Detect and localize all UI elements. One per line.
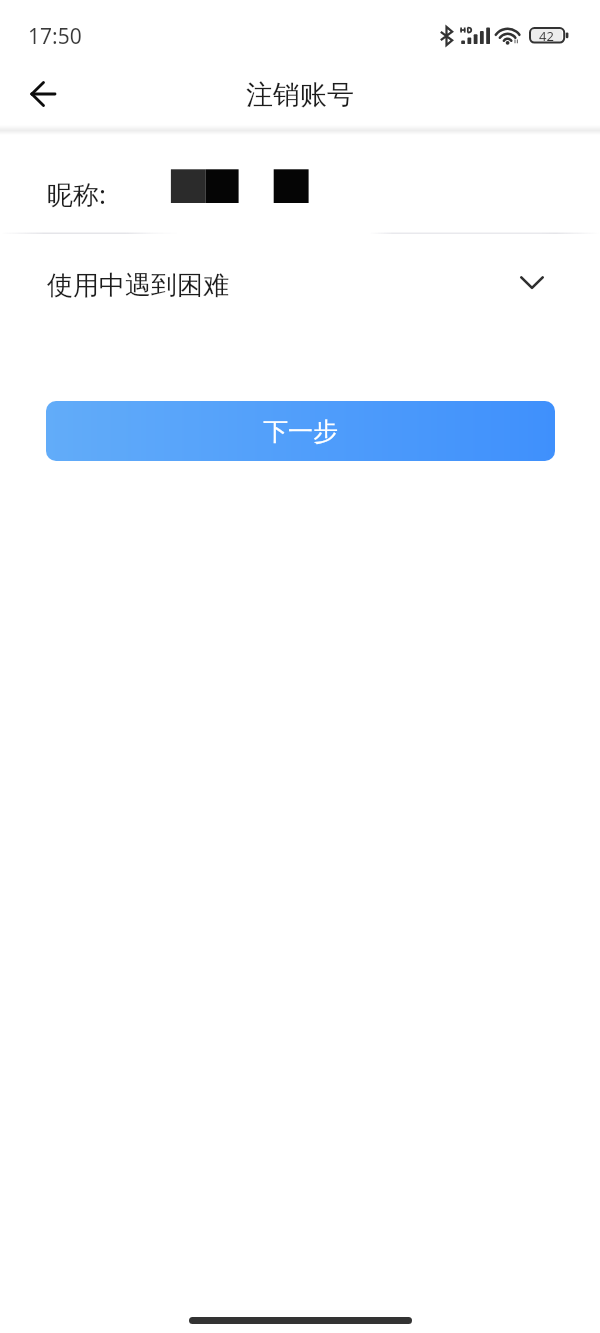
button[interactable]: 下一步 <box>46 401 555 461</box>
staticText: 使用中遇到困难 <box>47 269 229 302</box>
staticText: 42 <box>539 27 554 44</box>
button[interactable]: 使用中遇到困难 <box>0 255 600 315</box>
staticText: 昵称: <box>47 176 106 212</box>
staticText: 17:50 <box>28 22 82 51</box>
button[interactable]: Back <box>12 68 66 122</box>
staticText: 下一步 <box>263 416 338 447</box>
staticText: 注销账号 <box>246 78 354 112</box>
